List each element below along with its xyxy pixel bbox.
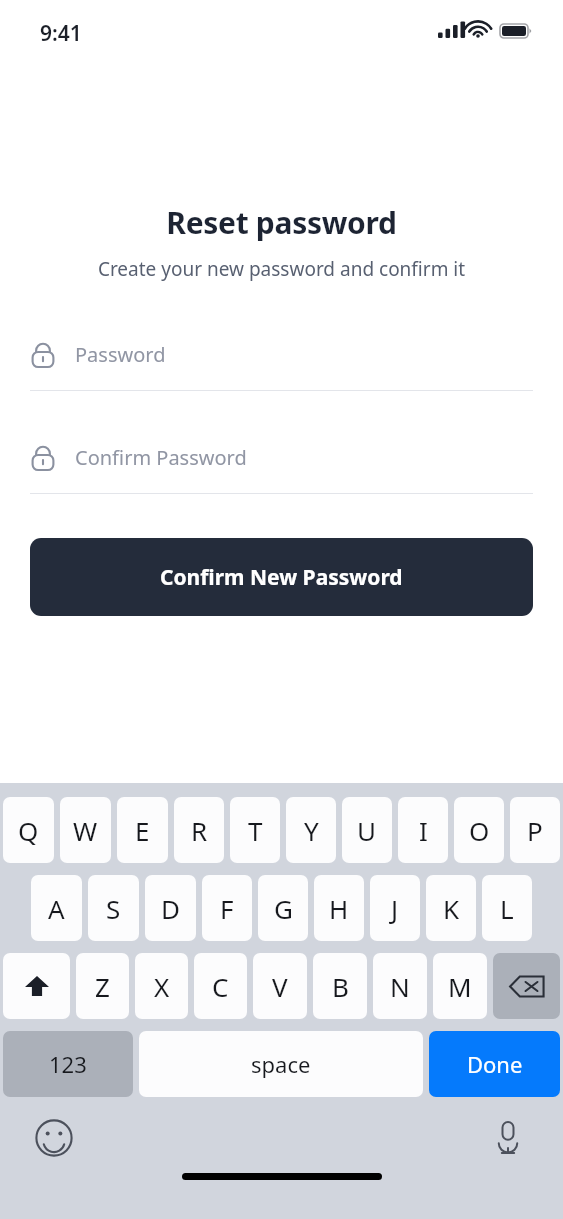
staticText: K <box>443 891 460 926</box>
button[interactable]: E <box>117 797 168 863</box>
staticText: X <box>154 969 170 1004</box>
button[interactable]: M <box>433 953 487 1019</box>
staticText: 9:41 <box>40 19 82 48</box>
staticText: space <box>251 1049 311 1079</box>
staticText: P <box>527 813 543 848</box>
button[interactable]: space <box>139 1031 423 1097</box>
button[interactable]: Y <box>286 797 336 863</box>
staticText: Q <box>18 813 39 848</box>
button[interactable]: C <box>194 953 247 1019</box>
button[interactable]: I <box>398 797 448 863</box>
staticText: I <box>419 813 428 848</box>
staticText: Y <box>304 813 319 848</box>
button[interactable]: O <box>454 797 504 863</box>
staticText: Confirm New Password <box>160 563 403 592</box>
staticText: O <box>469 813 490 848</box>
button[interactable]: Password <box>0 332 563 391</box>
staticText: S <box>106 891 121 926</box>
button[interactable]: L <box>482 875 532 941</box>
button[interactable]: H <box>314 875 364 941</box>
staticText: H <box>329 891 349 926</box>
button[interactable]: P <box>510 797 560 863</box>
button[interactable]: Q <box>3 797 54 863</box>
staticText: A <box>48 891 65 926</box>
button[interactable]: X <box>135 953 188 1019</box>
staticText: M <box>448 969 472 1004</box>
staticText: V <box>272 969 288 1004</box>
staticText: Z <box>95 969 110 1004</box>
button[interactable]: U <box>342 797 392 863</box>
staticText: Confirm Password <box>75 444 247 471</box>
button[interactable]: G <box>258 875 308 941</box>
staticText: D <box>161 891 180 926</box>
staticText: N <box>390 969 410 1004</box>
staticText: 123 <box>49 1049 87 1079</box>
button[interactable]: Emoji keyboard <box>31 1115 77 1161</box>
button[interactable]: 123 <box>3 1031 133 1097</box>
staticText: F <box>220 891 234 926</box>
button[interactable]: Done <box>429 1031 560 1097</box>
button[interactable]: V <box>253 953 307 1019</box>
staticText: G <box>274 891 293 926</box>
staticText: Reset password <box>0 202 563 243</box>
staticText: U <box>357 813 377 848</box>
button[interactable]: F <box>202 875 252 941</box>
button[interactable]: D <box>145 875 196 941</box>
button[interactable]: A <box>31 875 82 941</box>
button[interactable]: Confirm Password <box>0 435 563 494</box>
staticText: R <box>191 813 208 848</box>
staticText: B <box>332 969 349 1004</box>
staticText: E <box>135 813 150 848</box>
staticText: Create your new password and confirm it <box>0 256 563 282</box>
staticText: T <box>248 813 263 848</box>
button[interactable]: Backspace <box>493 953 560 1019</box>
button[interactable]: Z <box>76 953 129 1019</box>
button[interactable]: Shift <box>3 953 70 1019</box>
staticText: Done <box>467 1049 523 1079</box>
button[interactable]: Confirm New Password <box>30 538 533 616</box>
button[interactable]: B <box>313 953 367 1019</box>
staticText: L <box>500 891 514 926</box>
staticText: W <box>73 813 98 848</box>
staticText: J <box>391 891 399 926</box>
button[interactable]: N <box>373 953 427 1019</box>
button[interactable]: R <box>174 797 224 863</box>
button[interactable]: J <box>370 875 420 941</box>
button[interactable]: T <box>230 797 280 863</box>
button[interactable]: Voice input <box>485 1115 531 1161</box>
staticText: Password <box>75 341 166 368</box>
button[interactable]: W <box>60 797 111 863</box>
staticText: C <box>212 969 229 1004</box>
button[interactable]: S <box>88 875 139 941</box>
button[interactable]: K <box>426 875 476 941</box>
